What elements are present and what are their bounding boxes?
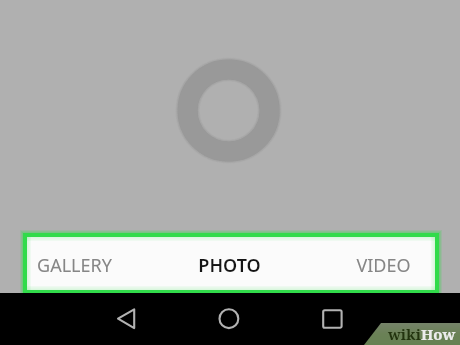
staticText: GALLERY xyxy=(37,253,112,278)
button[interactable]: VIDEO xyxy=(335,239,431,292)
button[interactable]: PHOTO xyxy=(181,239,277,292)
button[interactable]: GALLERY xyxy=(26,239,122,292)
staticText: PHOTO xyxy=(198,253,261,278)
staticText: VIDEO xyxy=(356,253,411,278)
button[interactable]: Back xyxy=(106,299,146,339)
button[interactable]: Recent apps xyxy=(312,299,352,339)
staticText: wiki xyxy=(388,324,421,344)
button[interactable]: Home xyxy=(208,299,248,339)
staticText: How xyxy=(421,324,456,344)
